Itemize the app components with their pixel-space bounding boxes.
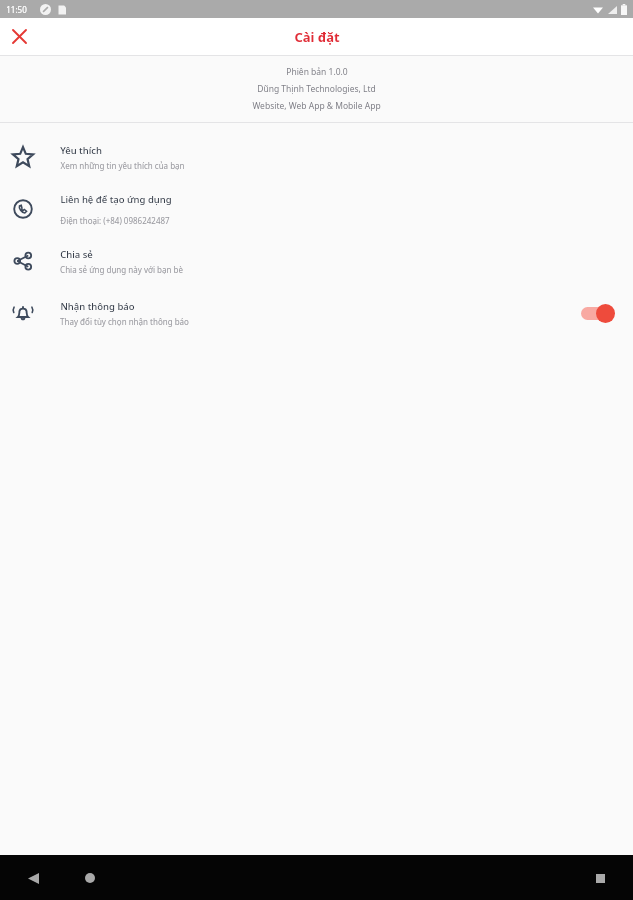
button[interactable]: Yêu thích (0, 131, 633, 183)
staticText: Website, Web App & Mobile App (252, 100, 381, 112)
staticText: Nhận thông báo (60, 300, 135, 313)
staticText: Chia sẻ (60, 248, 93, 261)
staticText: Điện thoại: (+84) 0986242487 (60, 215, 170, 226)
staticText: Cài đặt (294, 28, 340, 46)
button[interactable]: Notifications toggle (579, 303, 617, 323)
staticText: Xem những tin yêu thích của bạn (60, 160, 185, 171)
button[interactable]: Chia sẻ (0, 235, 633, 287)
staticText: Yêu thích (60, 144, 102, 157)
staticText: Phiên bản 1.0.0 (286, 66, 348, 78)
button[interactable]: Home (75, 863, 105, 893)
staticText: 11:50 (6, 4, 27, 15)
staticText: Dũng Thịnh Technologies, Ltd (257, 83, 376, 95)
staticText: Liên hệ để tạo ứng dụng (60, 193, 172, 206)
staticText: Thay đổi tùy chọn nhận thông báo (60, 316, 189, 327)
button[interactable]: Liên hệ để tạo ứng dụng (0, 183, 633, 235)
button[interactable]: Recents (585, 863, 615, 893)
staticText: Chia sẻ ứng dụng này với bạn bè (60, 264, 183, 275)
button[interactable]: Nhận thông báo (0, 287, 633, 339)
button[interactable]: Close (0, 18, 38, 55)
button[interactable]: Back (18, 863, 48, 893)
